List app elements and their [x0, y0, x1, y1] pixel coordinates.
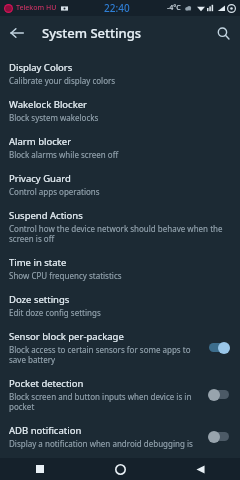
staticText: Block system wakelocks [9, 112, 99, 123]
staticText: Block alarms while screen off [9, 149, 119, 160]
button[interactable]: Privacy Guard [0, 166, 240, 203]
staticText: Suspend Actions [9, 209, 83, 222]
button[interactable]: Off [208, 388, 230, 401]
staticText: Alarm blocker [9, 135, 72, 148]
button[interactable]: Back [187, 458, 213, 480]
staticText: Time in state [9, 256, 67, 269]
button[interactable]: Search [206, 16, 240, 50]
staticText: Wakelock Blocker [9, 98, 87, 111]
button[interactable]: Pocket detection [0, 371, 240, 418]
button[interactable]: Recents [27, 458, 53, 480]
staticText: Control how the device network should be… [9, 223, 234, 244]
staticText: 22:40 [104, 1, 130, 15]
button[interactable]: Time in state [0, 250, 240, 287]
staticText: Privacy Guard [9, 172, 71, 185]
staticText: Display Colors [9, 61, 73, 74]
staticText: Control apps operations [9, 186, 100, 197]
button[interactable]: Home [107, 458, 133, 480]
staticText: Block access to certain sensors for some… [9, 344, 202, 365]
staticText: System Settings [42, 24, 142, 42]
button[interactable]: Wakelock Blocker [0, 92, 240, 129]
staticText: Telekom HU [16, 3, 57, 13]
staticText: Display a notification when android debu… [9, 438, 193, 449]
button[interactable]: Alarm blocker [0, 129, 240, 166]
staticText: Show CPU frequency statistics [9, 270, 122, 281]
button[interactable]: On [208, 341, 230, 354]
staticText: -4°C [167, 3, 181, 13]
button[interactable]: Sensor block per-package [0, 324, 240, 371]
button[interactable]: Doze settings [0, 287, 240, 324]
staticText: Calibrate your display colors [9, 75, 116, 86]
staticText: Doze settings [9, 293, 70, 306]
button[interactable]: Suspend Actions [0, 203, 240, 250]
staticText: Edit doze config settings [9, 307, 101, 318]
staticText: Sensor block per-package [9, 330, 124, 343]
button[interactable]: Display Colors [0, 55, 240, 92]
staticText: Pocket detection [9, 377, 84, 390]
button[interactable]: ADB notification [0, 418, 240, 455]
button[interactable]: Back [0, 16, 34, 50]
button[interactable]: Off [208, 430, 230, 443]
staticText: ADB notification [9, 424, 82, 437]
staticText: Block screen and button inputs when devi… [9, 391, 202, 412]
